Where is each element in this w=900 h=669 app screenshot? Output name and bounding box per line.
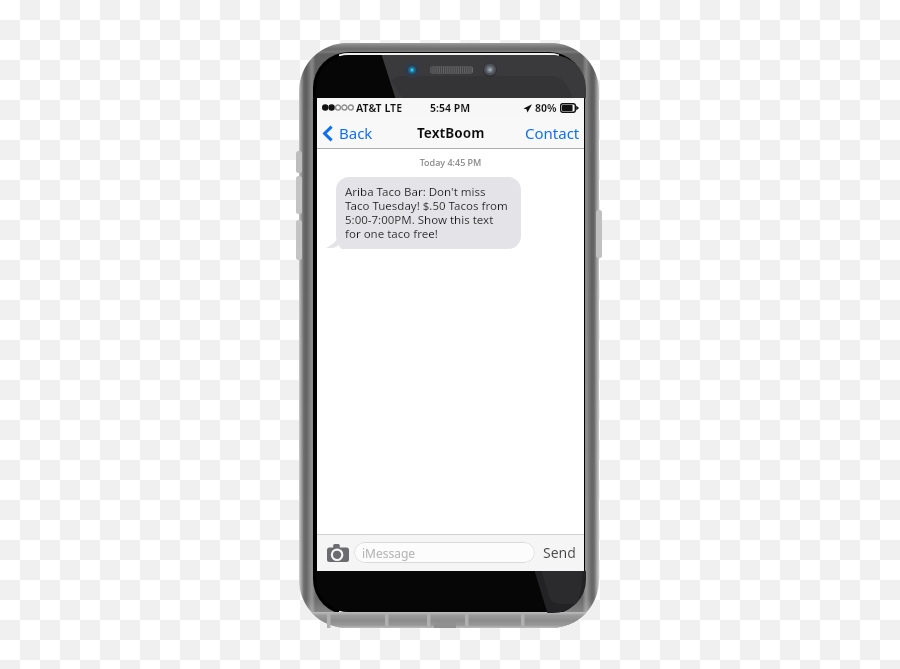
- button[interactable]: iMessage: [354, 542, 535, 563]
- staticText: Ariba Taco Bar: Don't miss Taco Tuesday!…: [345, 184, 508, 242]
- staticText: AT&T LTE: [356, 101, 403, 115]
- button[interactable]: Send: [542, 539, 577, 566]
- button[interactable]: Back: [317, 118, 377, 148]
- button[interactable]: Camera: [325, 541, 351, 565]
- staticText: TextBoom: [417, 124, 485, 142]
- staticText: 80%: [535, 101, 557, 115]
- staticText: iMessage: [362, 545, 416, 561]
- staticText: Contact: [525, 123, 580, 143]
- button[interactable]: Contact: [521, 118, 584, 148]
- staticText: 5:54 PM: [430, 101, 471, 115]
- staticText: Send: [543, 543, 576, 562]
- staticText: Today 4:45 PM: [317, 156, 584, 168]
- staticText: Back: [339, 123, 373, 143]
